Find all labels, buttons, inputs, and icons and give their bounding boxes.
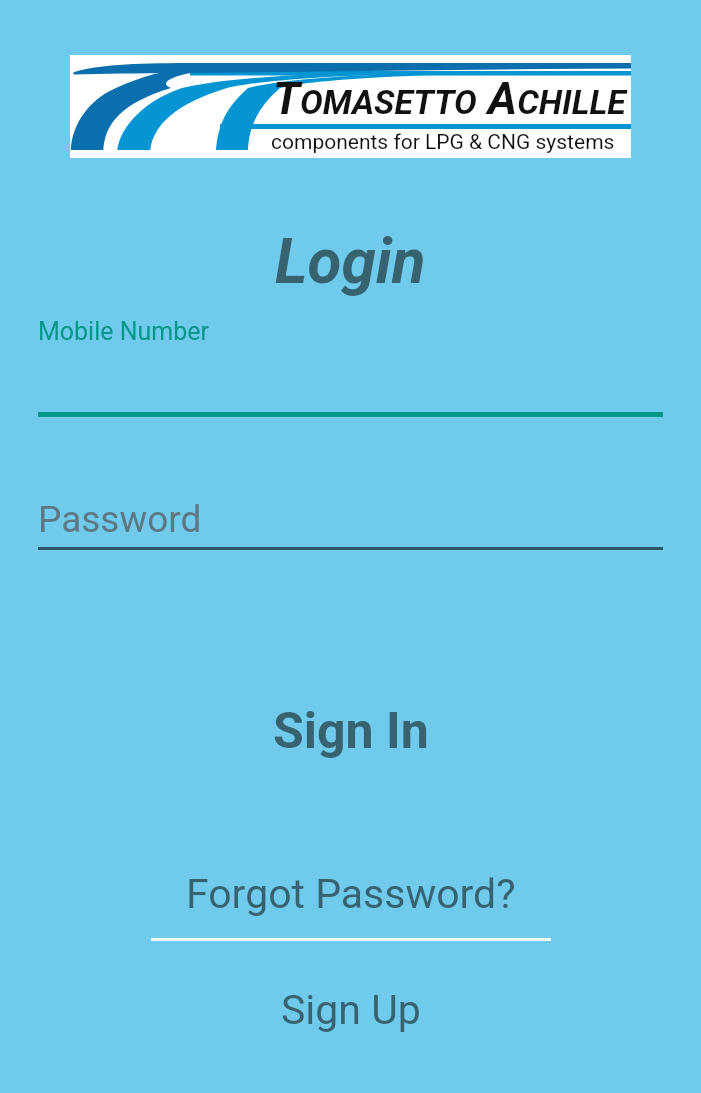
staticText: Sign Up [281, 986, 421, 1034]
button[interactable]: Forgot Password? [0, 866, 701, 922]
staticText: Mobile Number [38, 317, 210, 346]
staticText: Sign In [273, 702, 429, 761]
staticText: TOMASETTO ACHILLE [273, 72, 626, 125]
staticText: Login [275, 225, 426, 298]
button[interactable]: Sign Up [0, 982, 701, 1038]
staticText: components for LPG & CNG systems [271, 130, 615, 155]
staticText: Forgot Password? [186, 870, 516, 918]
staticText: Password [38, 498, 202, 541]
button[interactable]: Sign In [0, 700, 701, 762]
